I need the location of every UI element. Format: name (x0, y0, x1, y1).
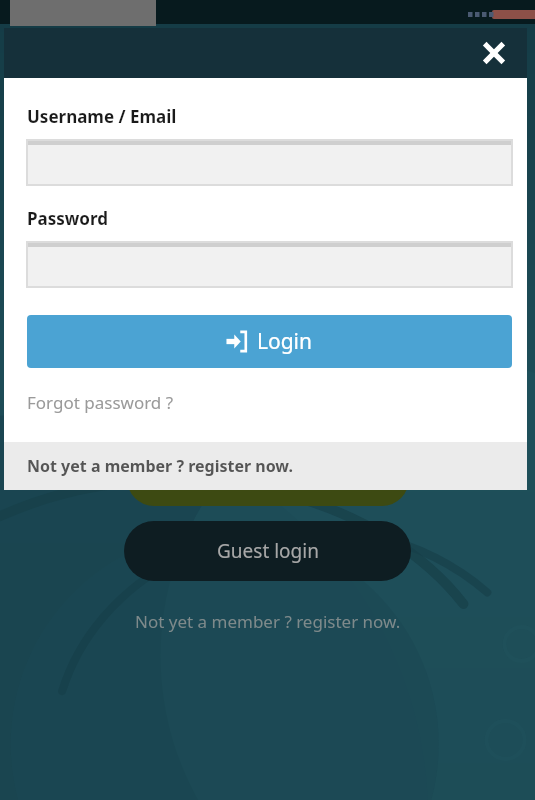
button[interactable]: Guest login (124, 521, 411, 581)
staticText: Forgot password ? (27, 391, 174, 414)
button[interactable]: Forgot password ? (27, 391, 174, 414)
staticText: Login (257, 327, 313, 356)
button[interactable]: Login (27, 315, 512, 368)
button[interactable] (27, 140, 512, 185)
staticText: Username / Email (27, 105, 177, 128)
button[interactable]: Not yet a member ? register now. (0, 606, 535, 636)
button[interactable]: Close (477, 36, 511, 70)
button[interactable]: Not yet a member ? register now. (4, 442, 527, 490)
staticText: Password (27, 207, 108, 230)
staticText: Not yet a member ? register now. (27, 455, 293, 477)
staticText: Guest login (217, 538, 319, 564)
staticText: Not yet a member ? register now. (135, 610, 401, 633)
button[interactable] (127, 452, 409, 506)
button[interactable] (27, 242, 512, 287)
